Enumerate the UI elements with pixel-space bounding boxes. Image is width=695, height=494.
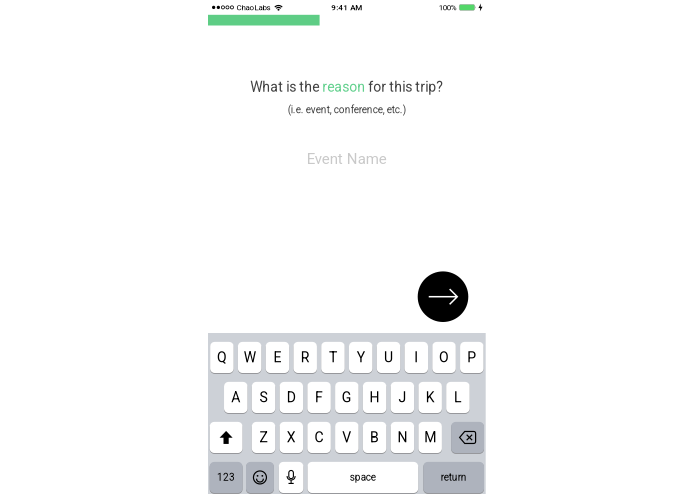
- button[interactable]: Emoji: [246, 461, 274, 493]
- staticText: 123: [217, 472, 235, 483]
- staticText: What is the: [250, 79, 322, 95]
- staticText: V: [342, 429, 351, 445]
- button[interactable]: O: [432, 341, 456, 373]
- button[interactable]: P: [460, 341, 484, 373]
- staticText: Y: [357, 349, 365, 365]
- staticText: Q: [217, 349, 227, 365]
- button[interactable]: Q: [210, 341, 234, 373]
- button[interactable]: Event Name: [208, 150, 486, 167]
- staticText: D: [287, 389, 296, 405]
- staticText: return: [441, 472, 467, 483]
- button[interactable]: Y: [349, 341, 372, 373]
- staticText: N: [397, 429, 407, 445]
- button[interactable]: Z: [252, 421, 275, 453]
- button[interactable]: X: [280, 421, 303, 453]
- button[interactable]: V: [335, 421, 359, 453]
- staticText: 9:41 AM: [331, 3, 362, 12]
- staticText: S: [259, 389, 267, 405]
- staticText: W: [244, 349, 256, 365]
- staticText: (i.e. event, conference, etc.): [288, 104, 406, 115]
- button[interactable]: H: [363, 381, 386, 413]
- staticText: G: [342, 389, 352, 405]
- staticText: ChaoLabs: [236, 3, 270, 12]
- button[interactable]: C: [307, 421, 331, 453]
- staticText: J: [398, 389, 406, 405]
- staticText: reason: [322, 79, 365, 95]
- staticText: M: [424, 429, 436, 445]
- button[interactable]: B: [363, 421, 386, 453]
- staticText: F: [315, 389, 323, 405]
- staticText: Event Name: [307, 150, 387, 167]
- button[interactable]: W: [238, 341, 261, 373]
- staticText: C: [315, 429, 324, 445]
- button[interactable]: J: [391, 381, 414, 413]
- button[interactable]: R: [293, 341, 317, 373]
- button[interactable]: E: [266, 341, 289, 373]
- staticText: K: [426, 389, 435, 405]
- staticText: Z: [259, 429, 267, 445]
- button[interactable]: Next: [418, 271, 468, 322]
- staticText: R: [301, 349, 310, 365]
- staticText: B: [370, 429, 379, 445]
- button[interactable]: L: [446, 381, 470, 413]
- button[interactable]: M: [418, 421, 442, 453]
- staticText: U: [384, 349, 393, 365]
- button[interactable]: I: [404, 341, 428, 373]
- staticText: X: [287, 429, 296, 445]
- staticText: T: [329, 349, 337, 365]
- staticText: O: [439, 349, 449, 365]
- button[interactable]: Numbers: [210, 461, 242, 493]
- staticText: I: [414, 349, 418, 365]
- staticText: H: [370, 389, 380, 405]
- button[interactable]: return: [423, 461, 484, 493]
- button[interactable]: Delete: [451, 421, 484, 453]
- staticText: A: [231, 389, 240, 405]
- staticText: P: [467, 349, 476, 365]
- button[interactable]: A: [224, 381, 247, 413]
- button[interactable]: U: [377, 341, 400, 373]
- button[interactable]: F: [307, 381, 331, 413]
- staticText: space: [350, 472, 376, 483]
- staticText: 100%: [439, 3, 457, 12]
- button[interactable]: G: [335, 381, 359, 413]
- button[interactable]: K: [418, 381, 442, 413]
- staticText: E: [273, 349, 281, 365]
- button[interactable]: Dictation: [279, 461, 303, 493]
- staticText: for this trip?: [365, 79, 443, 95]
- button[interactable]: D: [280, 381, 303, 413]
- button[interactable]: space: [307, 461, 418, 493]
- button[interactable]: S: [252, 381, 275, 413]
- button[interactable]: Shift: [210, 421, 242, 453]
- staticText: L: [454, 389, 462, 405]
- button[interactable]: N: [391, 421, 414, 453]
- button[interactable]: T: [321, 341, 345, 373]
